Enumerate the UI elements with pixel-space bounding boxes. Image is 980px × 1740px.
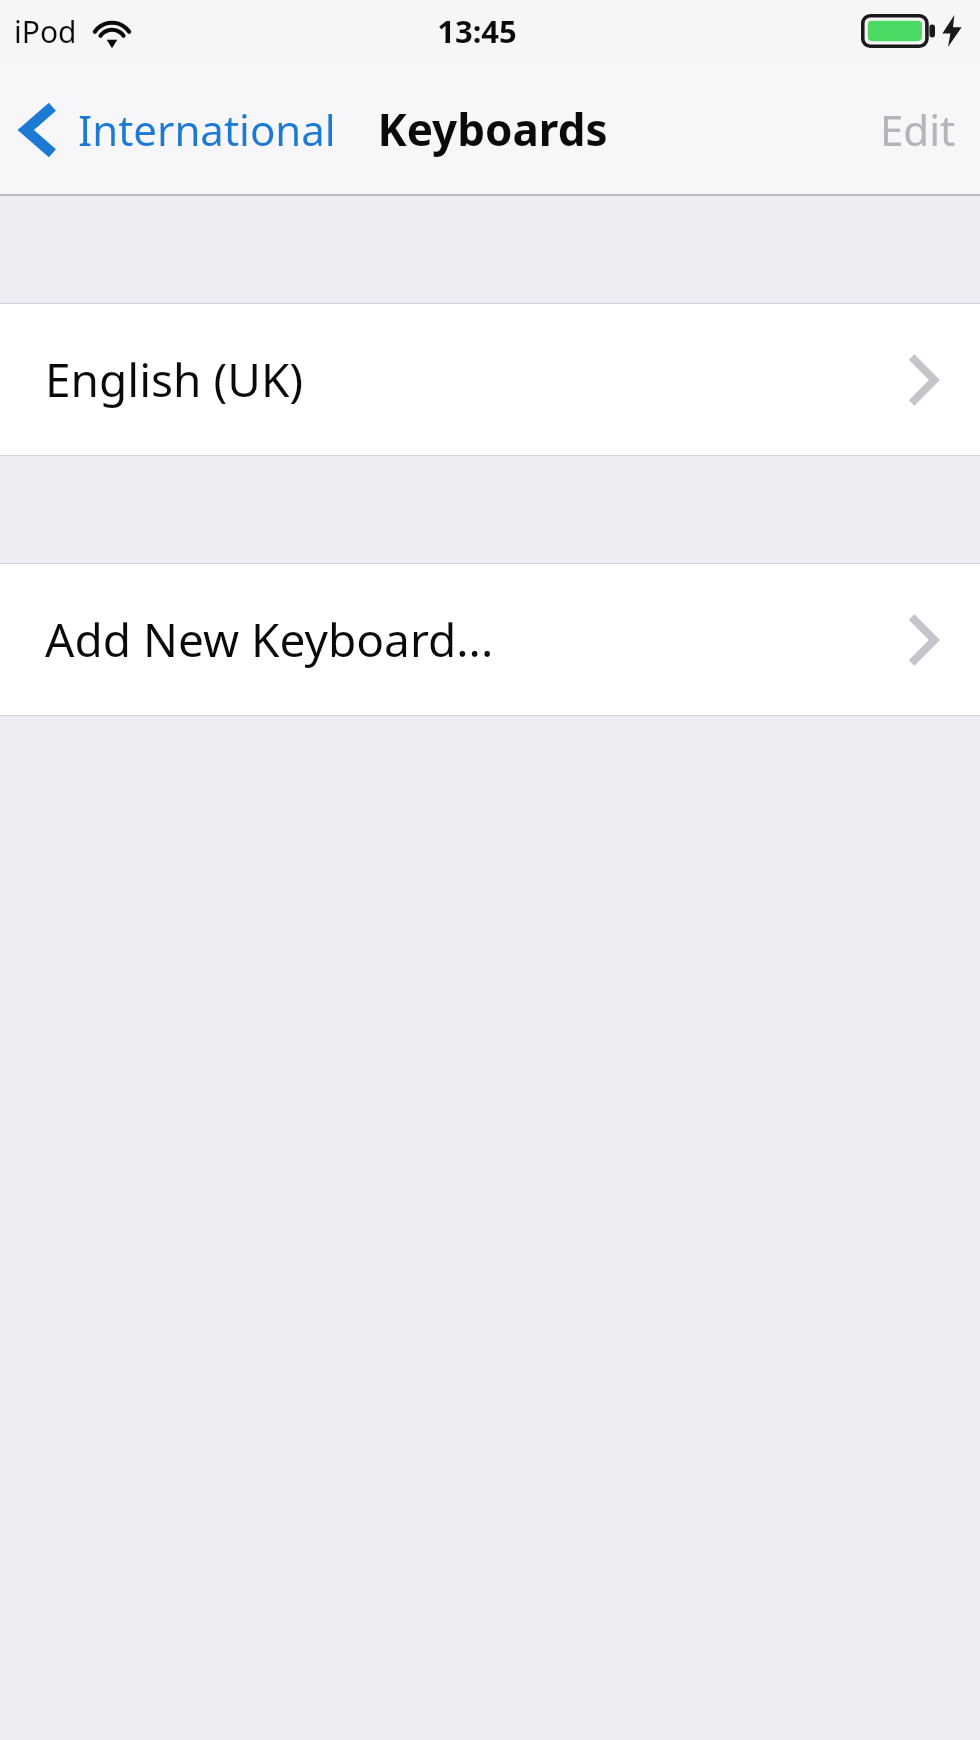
button[interactable]: Add New Keyboard... [0, 564, 980, 715]
button[interactable]: Back [0, 93, 346, 166]
staticText: Add New Keyboard... [45, 608, 494, 671]
other: Back [20, 103, 56, 157]
staticText: Edit [880, 101, 956, 158]
staticText: International [78, 101, 336, 158]
button[interactable]: English (UK) [0, 304, 980, 455]
staticText: Keyboards [377, 99, 608, 159]
staticText: English (UK) [45, 348, 304, 411]
staticText: 13:45 [437, 10, 517, 52]
button[interactable]: Edit [864, 93, 980, 166]
staticText: iPod [14, 11, 77, 52]
